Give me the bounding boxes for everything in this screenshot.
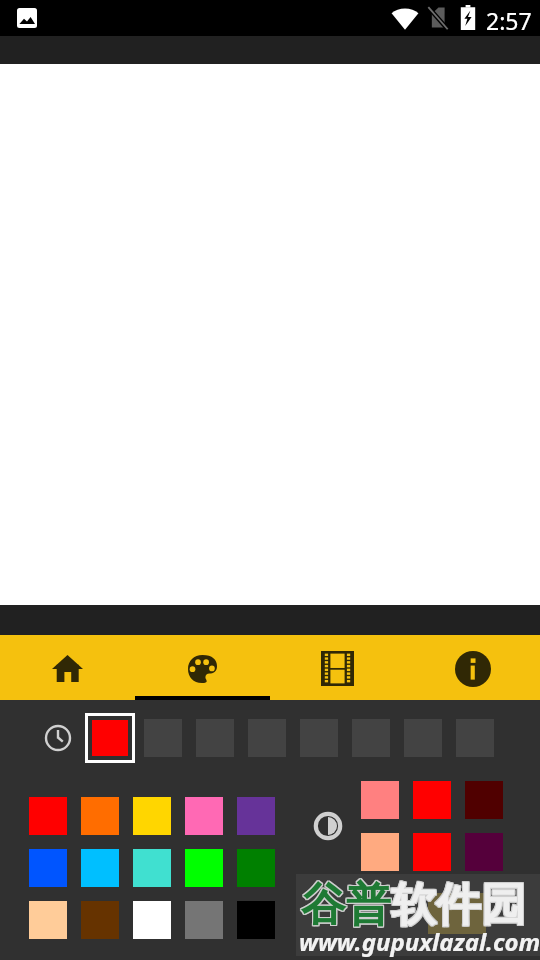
button[interactable]: Brightness <box>310 808 346 844</box>
button[interactable]: Current color red <box>85 713 135 763</box>
staticText: 软件园 <box>391 876 526 933</box>
staticText: 2:57 <box>486 5 532 36</box>
staticText: 软件园 <box>392 878 527 935</box>
button[interactable]: Home <box>0 635 135 696</box>
staticText: 谷普 <box>300 877 390 934</box>
staticText: 谷普 <box>301 878 391 935</box>
button[interactable]: Recent colors <box>41 721 75 755</box>
staticText: 谷普 <box>301 876 391 933</box>
staticText: 软件园 <box>390 877 525 934</box>
button[interactable]: Info <box>405 635 540 696</box>
button[interactable]: Film <box>270 635 405 696</box>
staticText: 谷普 <box>301 877 391 934</box>
button[interactable]: Palette <box>135 635 270 696</box>
staticText: 软件园 <box>392 876 527 933</box>
staticText: 谷普 <box>302 876 392 933</box>
staticText: 谷普 <box>300 878 390 935</box>
staticText: 软件园 <box>391 878 526 935</box>
staticText: 谷普 <box>302 878 392 935</box>
staticText: www.gupuxlazal.com <box>299 925 540 958</box>
staticText: 谷普 <box>302 877 392 934</box>
staticText: 谷普 <box>300 876 390 933</box>
staticText: 软件园 <box>391 877 526 934</box>
staticText: 软件园 <box>390 878 525 935</box>
staticText: 软件园 <box>390 876 525 933</box>
staticText: 软件园 <box>392 877 527 934</box>
